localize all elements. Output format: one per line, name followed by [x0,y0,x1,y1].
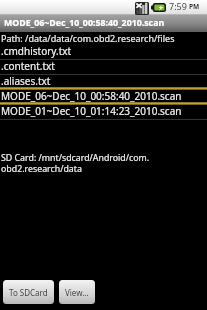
staticText: MODE_06~Dec_10_00:58:40_2010.scan [4,17,165,29]
staticText: Path: /data/data/com.obd2.research/files [1,32,175,44]
staticText: To SDCard [9,287,48,298]
staticText: .cmdhistory.txt [1,44,72,58]
staticText: .aliases.txt [1,74,51,88]
staticText: 7:59 [169,0,187,12]
staticText: MODE_01~Dec_10_01:14:23_2010.scan [1,104,182,118]
button[interactable]: MODE_06~Dec_10_00:58:40_2010.scan [0,90,207,105]
button[interactable]: .cmdhistory.txt [0,45,207,60]
staticText: MODE_06~Dec_10_00:58:40_2010.scan [1,89,182,103]
button[interactable]: .content.txt [0,60,207,75]
button[interactable]: .aliases.txt [0,75,207,90]
other: Battery charging [151,3,166,12]
button[interactable]: MODE_01~Dec_10_01:14:23_2010.scan [0,105,207,120]
staticText: SD Card: /mnt/sdcard/Android/com. obd2.r… [1,152,150,175]
button[interactable]: To SDCard [3,280,54,304]
button[interactable]: View... [59,280,95,304]
staticText: .content.txt [1,59,55,73]
staticText: PM [189,2,200,11]
staticText: View... [65,287,89,298]
other: Mobile signal [135,2,149,15]
